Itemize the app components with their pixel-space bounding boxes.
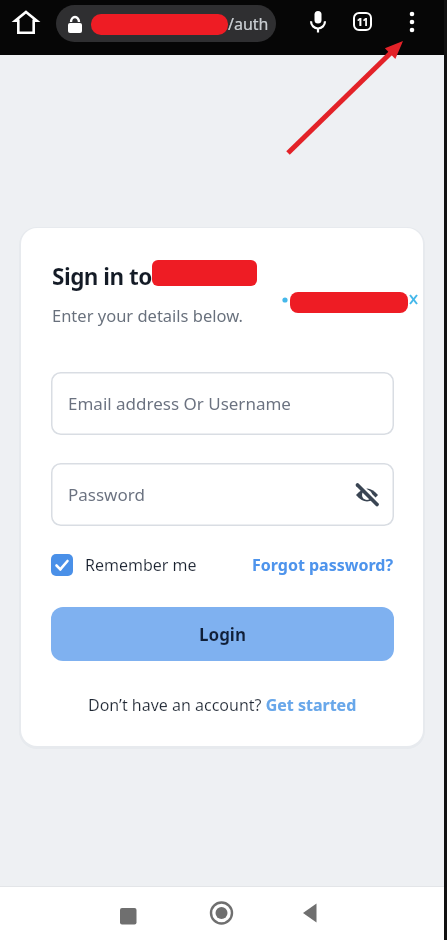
button[interactable]: Forgot password? bbox=[252, 554, 394, 576]
button[interactable]: Login bbox=[51, 607, 394, 661]
staticText: Enter your details below. bbox=[52, 304, 243, 326]
staticText: Sign in to bbox=[52, 261, 152, 292]
button[interactable] bbox=[14, 10, 38, 34]
button[interactable] bbox=[296, 899, 328, 931]
button[interactable]: Don’t have an account? Get started bbox=[88, 694, 357, 716]
staticText: Email address Or Username bbox=[68, 392, 291, 415]
button[interactable] bbox=[354, 483, 380, 507]
staticText: Login bbox=[199, 623, 247, 646]
button[interactable]: /auth bbox=[56, 5, 276, 42]
staticText: Remember me bbox=[85, 554, 197, 576]
button[interactable] bbox=[206, 899, 238, 931]
button[interactable] bbox=[112, 903, 144, 935]
button[interactable] bbox=[400, 10, 424, 34]
button[interactable] bbox=[306, 10, 330, 34]
staticText: /auth bbox=[228, 13, 269, 35]
staticText: 11 bbox=[357, 15, 369, 29]
button[interactable]: Password bbox=[51, 463, 394, 526]
button[interactable] bbox=[51, 554, 73, 576]
staticText: Password bbox=[68, 483, 145, 506]
button[interactable]: Email address Or Username bbox=[51, 372, 394, 435]
button[interactable]: 11 bbox=[353, 12, 372, 31]
